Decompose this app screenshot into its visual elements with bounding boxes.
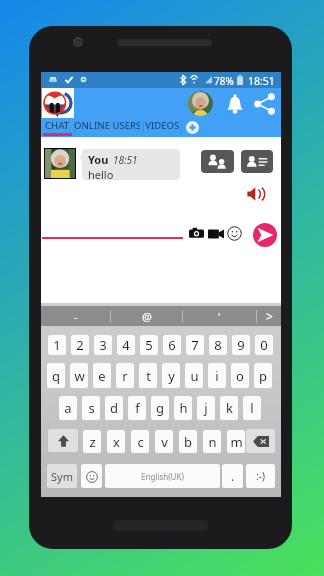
staticText: o <box>236 367 244 385</box>
button[interactable]: 9 <box>232 335 250 355</box>
button[interactable]: - <box>41 306 110 326</box>
staticText: . <box>231 468 235 484</box>
staticText: g <box>156 399 164 417</box>
staticText: s <box>88 399 95 417</box>
button[interactable]: You <box>82 149 180 180</box>
staticText: f <box>135 399 140 417</box>
button[interactable]: Emoji keyboard <box>81 464 102 488</box>
button[interactable]: w <box>70 363 88 388</box>
button[interactable]: :-) <box>246 464 275 488</box>
button[interactable]: h <box>174 396 192 420</box>
button[interactable]: ' <box>183 306 256 326</box>
button[interactable]: e <box>93 363 111 388</box>
button[interactable]: Video <box>208 228 224 240</box>
staticText: 5 <box>145 336 153 354</box>
button[interactable]: Camera <box>189 226 204 241</box>
button[interactable]: Profile <box>188 91 213 116</box>
staticText: 6 <box>168 336 176 354</box>
button[interactable]: More suggestions <box>257 306 281 326</box>
staticText: d <box>110 399 118 417</box>
staticText: b <box>184 433 192 451</box>
button[interactable]: o <box>231 363 249 388</box>
button[interactable]: q <box>47 363 65 388</box>
button[interactable]: k <box>220 396 238 420</box>
button[interactable]: u <box>185 363 203 388</box>
button[interactable]: m <box>227 430 245 453</box>
staticText: n <box>208 433 217 451</box>
button[interactable]: CHAT <box>42 118 73 137</box>
button[interactable]: 6 <box>163 335 181 355</box>
button[interactable]: b <box>179 430 197 453</box>
button[interactable]: t <box>139 363 157 388</box>
staticText: q <box>52 367 60 385</box>
button[interactable]: x <box>107 430 125 453</box>
button[interactable]: j <box>197 396 215 420</box>
button[interactable]: Emoji <box>227 226 242 241</box>
button[interactable]: Sym <box>47 464 77 488</box>
button[interactable]: Users <box>201 150 234 173</box>
button[interactable]: 0 <box>255 335 273 355</box>
button[interactable]: f <box>128 396 146 420</box>
staticText: CHAT <box>45 119 70 132</box>
button[interactable]: Share <box>253 92 276 116</box>
button[interactable]: App logo <box>42 88 74 118</box>
staticText: r <box>122 367 128 385</box>
button[interactable]: n <box>203 430 221 453</box>
staticText: 1 <box>53 336 61 354</box>
button[interactable]: Profile details <box>241 150 273 173</box>
button[interactable]: d <box>105 396 123 420</box>
button[interactable]: p <box>254 363 272 388</box>
staticText: English(UK) <box>141 471 184 482</box>
staticText: > <box>266 308 273 324</box>
staticText: h <box>179 399 188 417</box>
button[interactable]: VIDEOS <box>144 118 180 137</box>
staticText: ONLINE USERS <box>74 119 140 132</box>
button[interactable]: Notifications <box>226 93 244 115</box>
button[interactable]: Add <box>186 121 199 134</box>
button[interactable]: 8 <box>209 335 227 355</box>
button[interactable]: l <box>243 396 261 420</box>
staticText: p <box>259 367 267 385</box>
button[interactable]: g <box>151 396 169 420</box>
staticText: :-) <box>256 469 265 483</box>
button[interactable]: s <box>82 396 100 420</box>
staticText: 3 <box>99 336 107 354</box>
button[interactable]: ONLINE USERS <box>74 118 140 137</box>
button[interactable]: Backspace <box>246 429 275 453</box>
button[interactable]: a <box>59 396 77 420</box>
staticText: @ <box>142 309 152 324</box>
staticText: 78% <box>214 74 234 88</box>
button[interactable]: r <box>116 363 134 388</box>
button[interactable]: . <box>222 464 243 488</box>
button[interactable]: z <box>83 430 101 453</box>
button[interactable]: Sound <box>247 187 265 201</box>
staticText: 8 <box>214 336 222 354</box>
staticText: x <box>113 433 120 451</box>
button[interactable]: Sender photo <box>45 149 75 178</box>
button[interactable]: i <box>208 363 226 388</box>
staticText: Sym <box>51 469 73 484</box>
button[interactable]: v <box>155 430 173 453</box>
staticText: l <box>250 399 254 417</box>
staticText: 0 <box>260 336 268 354</box>
staticText: 7 <box>191 336 199 354</box>
button[interactable]: 3 <box>94 335 112 355</box>
button[interactable]: Shift <box>48 429 78 452</box>
button[interactable]: y <box>162 363 180 388</box>
button[interactable]: 2 <box>71 335 89 355</box>
button[interactable]: 1 <box>48 335 66 355</box>
button[interactable]: 5 <box>140 335 158 355</box>
button[interactable]: c <box>131 430 149 453</box>
button[interactable]: Send <box>253 223 277 247</box>
staticText: - <box>74 309 78 324</box>
staticText: VIDEOS <box>145 119 180 132</box>
staticText: j <box>204 399 208 417</box>
staticText: ' <box>218 309 221 324</box>
button[interactable]: 4 <box>117 335 135 355</box>
button[interactable]: English(UK) <box>105 464 220 488</box>
button[interactable]: @ <box>111 306 182 326</box>
staticText: You <box>88 152 109 167</box>
staticText: e <box>98 367 106 385</box>
button[interactable]: 7 <box>186 335 204 355</box>
staticText: m <box>230 433 243 451</box>
